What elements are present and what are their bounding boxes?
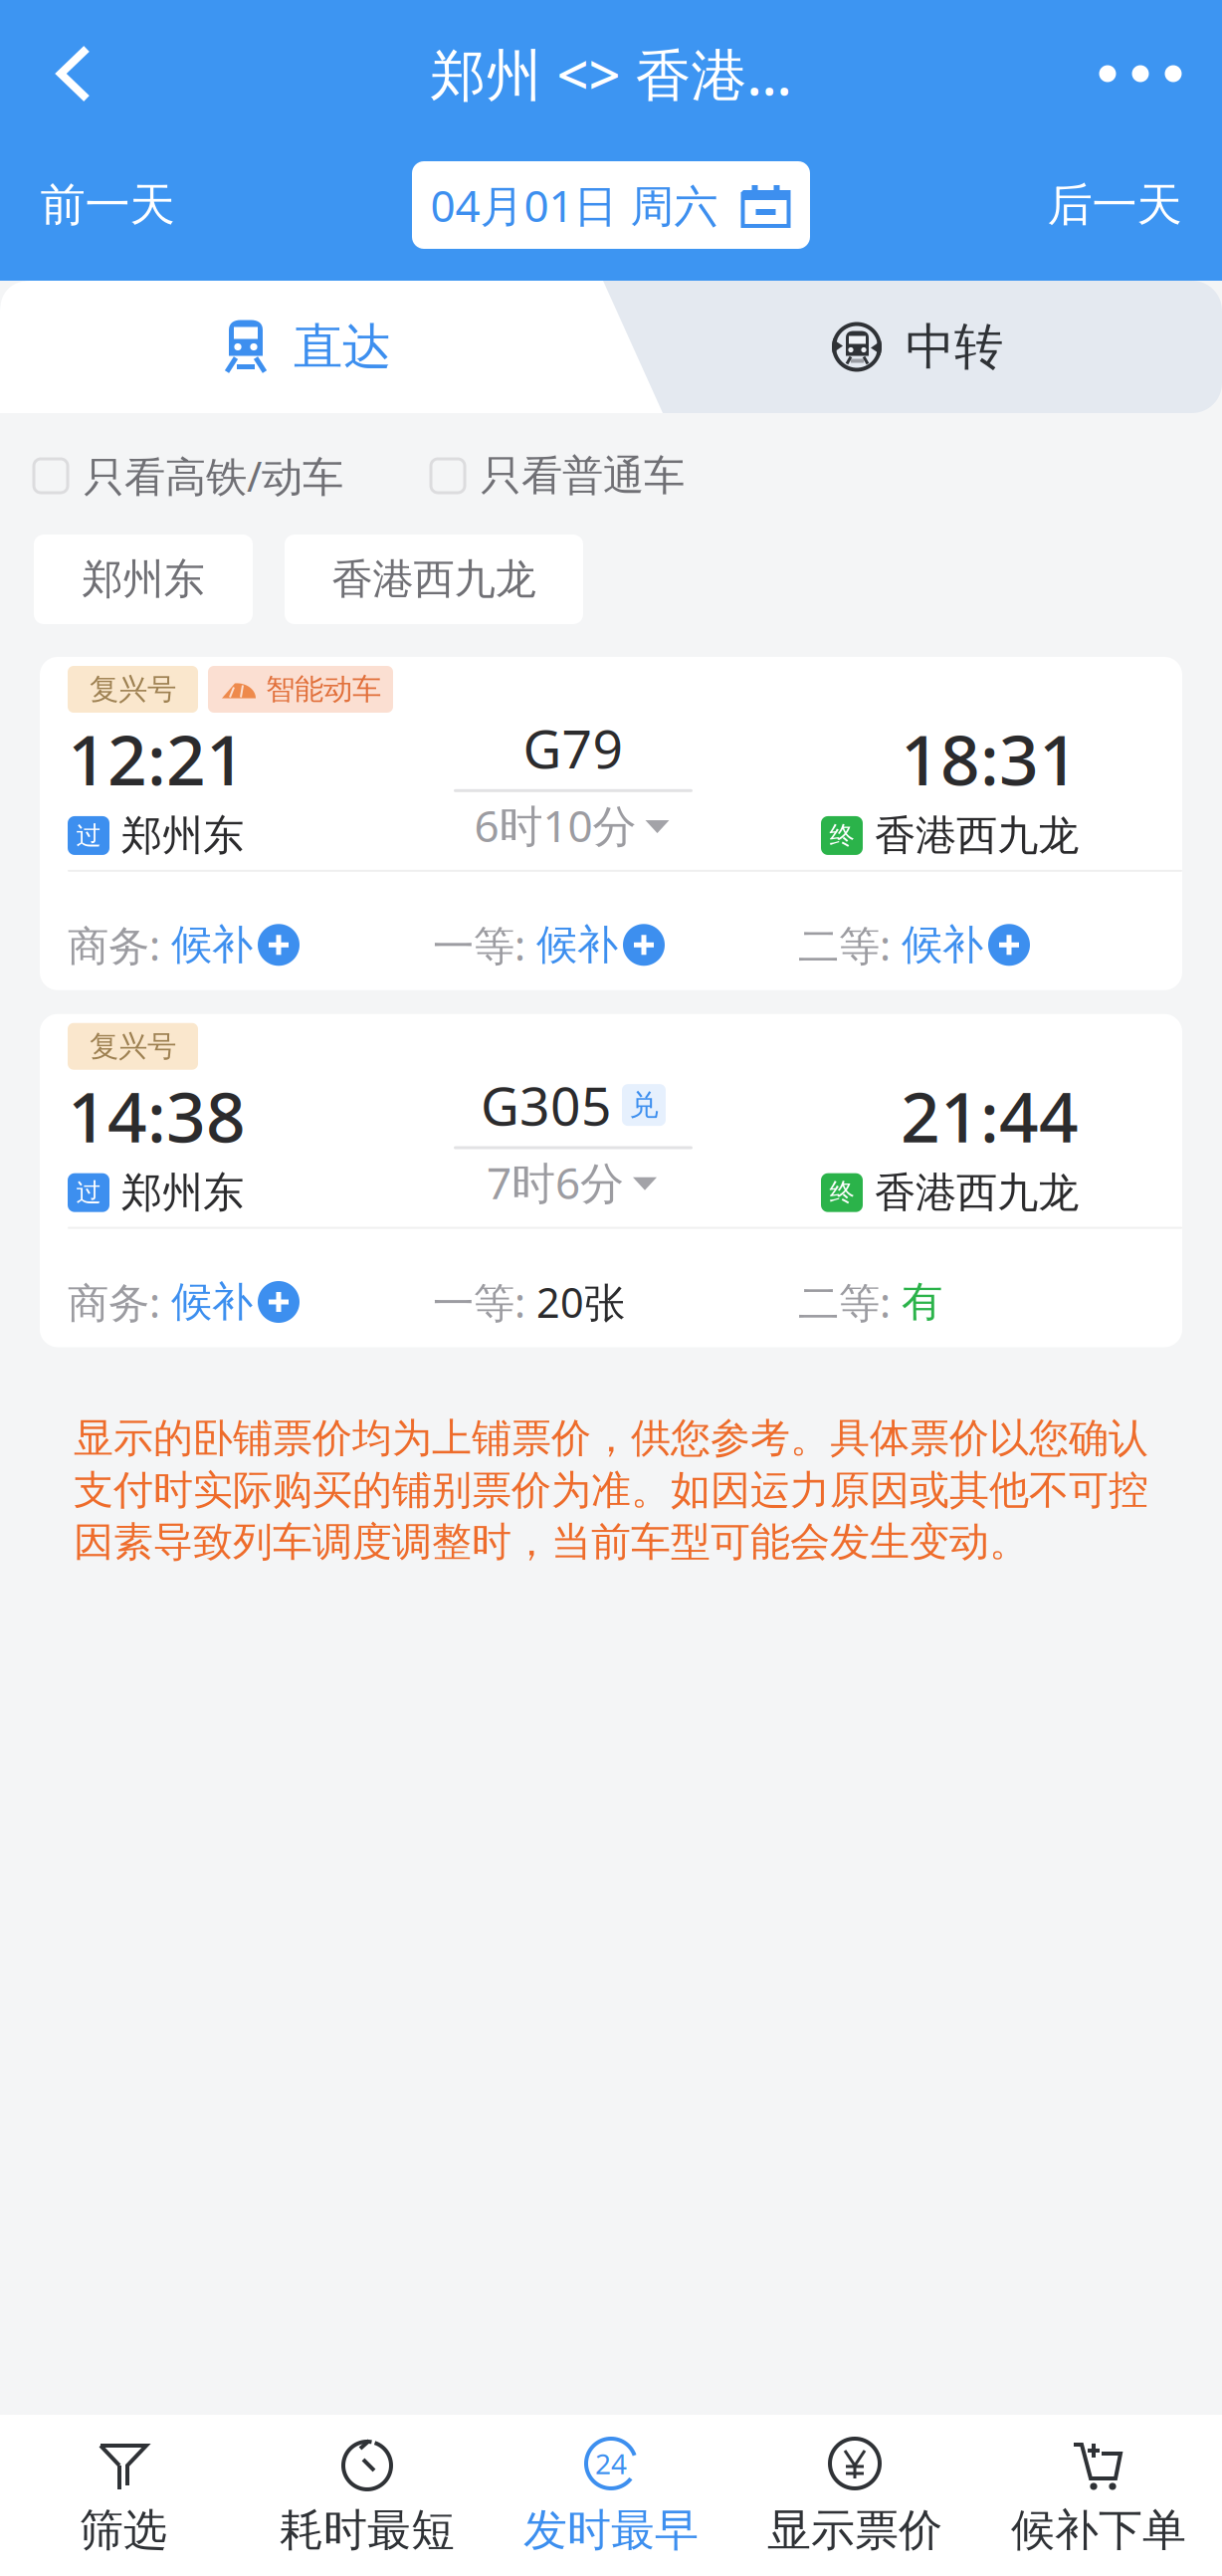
staticText: 12:21 bbox=[68, 713, 246, 804]
staticText: 候补 bbox=[171, 920, 253, 970]
staticText: 二等: bbox=[798, 1275, 902, 1329]
staticText: 直达 bbox=[294, 317, 391, 377]
button[interactable]: 后一天 bbox=[1007, 142, 1222, 268]
staticText: 发时最早 bbox=[523, 2503, 699, 2557]
staticText: G305 bbox=[481, 1070, 612, 1140]
staticText: 耗时最短 bbox=[280, 2503, 455, 2557]
button[interactable]: 耗时最短 bbox=[245, 2415, 489, 2576]
button[interactable]: 前一天 bbox=[0, 142, 215, 268]
staticText: 有 bbox=[902, 1277, 942, 1327]
staticText: 终 bbox=[829, 820, 854, 851]
staticText: 筛选 bbox=[80, 2503, 167, 2557]
staticText: 一等: bbox=[433, 918, 536, 972]
button[interactable]: 郑州东 bbox=[34, 535, 253, 624]
button[interactable]: 直达 bbox=[0, 281, 611, 413]
staticText: 04月01日 周六 bbox=[430, 176, 718, 234]
staticText: 候补 bbox=[902, 920, 983, 970]
staticText: 显示的卧铺票价均为上铺票价，供您参考。具体票价以您确认支付时实际购买的铺别票价为… bbox=[74, 1414, 1148, 1567]
staticText: 14:38 bbox=[68, 1070, 246, 1161]
button[interactable]: 复兴号 bbox=[40, 1014, 1182, 1347]
button[interactable]: 04月01日 周六 bbox=[412, 161, 810, 249]
staticText: 商务: bbox=[68, 1275, 171, 1329]
staticText: 郑州东 bbox=[82, 554, 204, 605]
button[interactable]: 只看普通车 bbox=[431, 441, 685, 511]
staticText: 20张 bbox=[536, 1275, 625, 1329]
button[interactable]: 返回 bbox=[0, 0, 149, 148]
button[interactable]: 香港西九龙 bbox=[285, 535, 583, 624]
staticText: 香港西九龙 bbox=[875, 810, 1079, 861]
staticText: 候补 bbox=[536, 920, 618, 970]
button[interactable]: 显示票价 bbox=[733, 2415, 977, 2576]
staticText: 过 bbox=[76, 820, 101, 851]
staticText: 24 bbox=[595, 2445, 627, 2482]
button[interactable]: 24 bbox=[489, 2415, 733, 2576]
staticText: 郑州东 bbox=[121, 810, 244, 861]
staticText: 智能动车 bbox=[266, 671, 381, 707]
staticText: 后一天 bbox=[1047, 177, 1182, 233]
staticText: 18:31 bbox=[901, 713, 1079, 804]
staticText: 香港西九龙 bbox=[332, 554, 536, 605]
staticText: 二等: bbox=[798, 918, 902, 972]
staticText: 郑州 <> 香港... bbox=[430, 37, 792, 111]
staticText: 复兴号 bbox=[90, 671, 176, 707]
staticText: 6时10分 bbox=[474, 796, 636, 854]
button[interactable]: 候补下单 bbox=[977, 2415, 1221, 2576]
staticText: 前一天 bbox=[40, 177, 175, 233]
button[interactable]: 更多 bbox=[1073, 0, 1222, 148]
staticText: 7时6分 bbox=[487, 1153, 624, 1211]
staticText: 香港西九龙 bbox=[875, 1167, 1079, 1218]
staticText bbox=[983, 932, 988, 958]
staticText: 只看高铁/动车 bbox=[84, 449, 343, 503]
button[interactable]: 中转 bbox=[611, 281, 1222, 413]
staticText: 终 bbox=[829, 1177, 854, 1208]
staticText: 21:44 bbox=[901, 1070, 1079, 1161]
button[interactable]: 复兴号 bbox=[40, 657, 1182, 990]
staticText: 兑 bbox=[629, 1087, 658, 1123]
staticText: 只看普通车 bbox=[481, 451, 685, 501]
staticText: 商务: bbox=[68, 918, 171, 972]
staticText: 候补 bbox=[171, 1277, 253, 1327]
button[interactable]: 只看高铁/动车 bbox=[34, 441, 343, 511]
staticText: 显示票价 bbox=[767, 2503, 942, 2557]
button[interactable]: 筛选 bbox=[1, 2415, 245, 2576]
staticText: 中转 bbox=[906, 317, 1003, 377]
staticText: 郑州东 bbox=[121, 1167, 244, 1218]
staticText: G79 bbox=[523, 713, 623, 783]
staticText: 一等: bbox=[433, 1275, 536, 1329]
staticText: 候补下单 bbox=[1011, 2503, 1186, 2557]
staticText: 过 bbox=[76, 1177, 101, 1208]
staticText: 复兴号 bbox=[90, 1028, 176, 1064]
